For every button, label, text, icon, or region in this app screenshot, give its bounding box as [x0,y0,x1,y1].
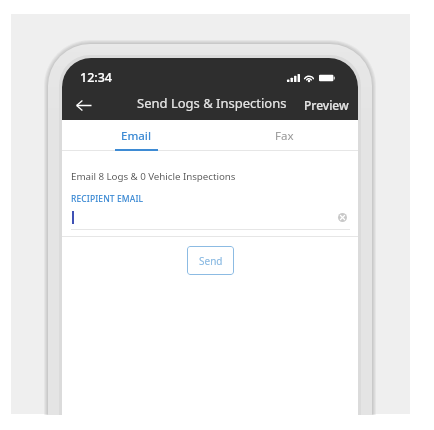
button[interactable]: Email [62,120,210,150]
staticText: Preview [304,97,349,113]
staticText: Email [121,128,152,144]
staticText: Fax [275,128,294,144]
button[interactable]: Send [187,246,234,275]
button[interactable]: Preview [295,91,358,119]
staticText: 12:34 [80,69,113,86]
staticText: RECIPIENT EMAIL [71,193,144,205]
staticText: Send Logs & Inspections [137,94,287,112]
button[interactable]: Fax [210,120,358,150]
staticText: Send [199,254,223,268]
staticText: Email 8 Logs & 0 Vehicle Inspections [71,170,236,183]
button[interactable]: Back [70,91,98,119]
button[interactable]: Clear text [336,211,349,224]
